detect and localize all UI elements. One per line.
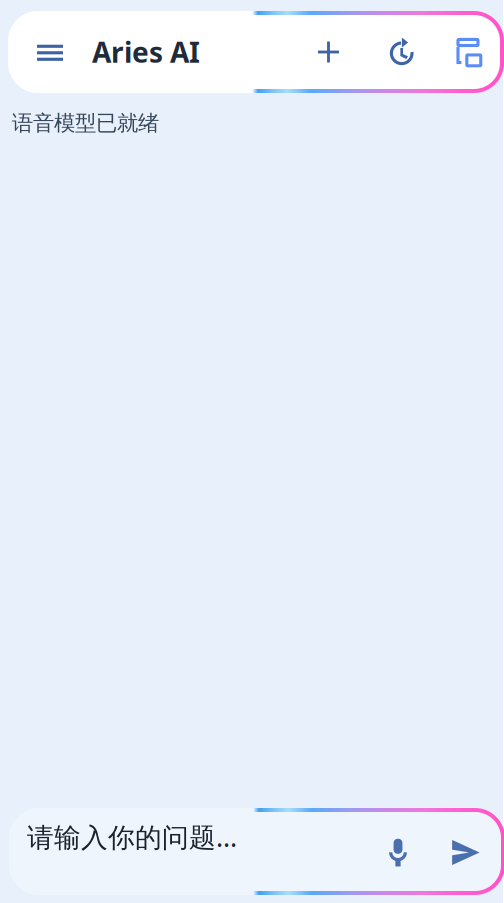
button[interactable]: Send	[431, 819, 499, 883]
button[interactable]: History	[368, 19, 438, 85]
staticText: Aries AI	[92, 33, 200, 71]
button[interactable]: Panels	[438, 19, 504, 85]
staticText: 语音模型已就绪	[12, 110, 159, 136]
button[interactable]: Voice input	[375, 819, 431, 883]
button[interactable]: New chat	[297, 19, 368, 85]
button[interactable]: Menu	[16, 20, 76, 84]
staticText: 请输入你的问题...	[27, 819, 237, 854]
